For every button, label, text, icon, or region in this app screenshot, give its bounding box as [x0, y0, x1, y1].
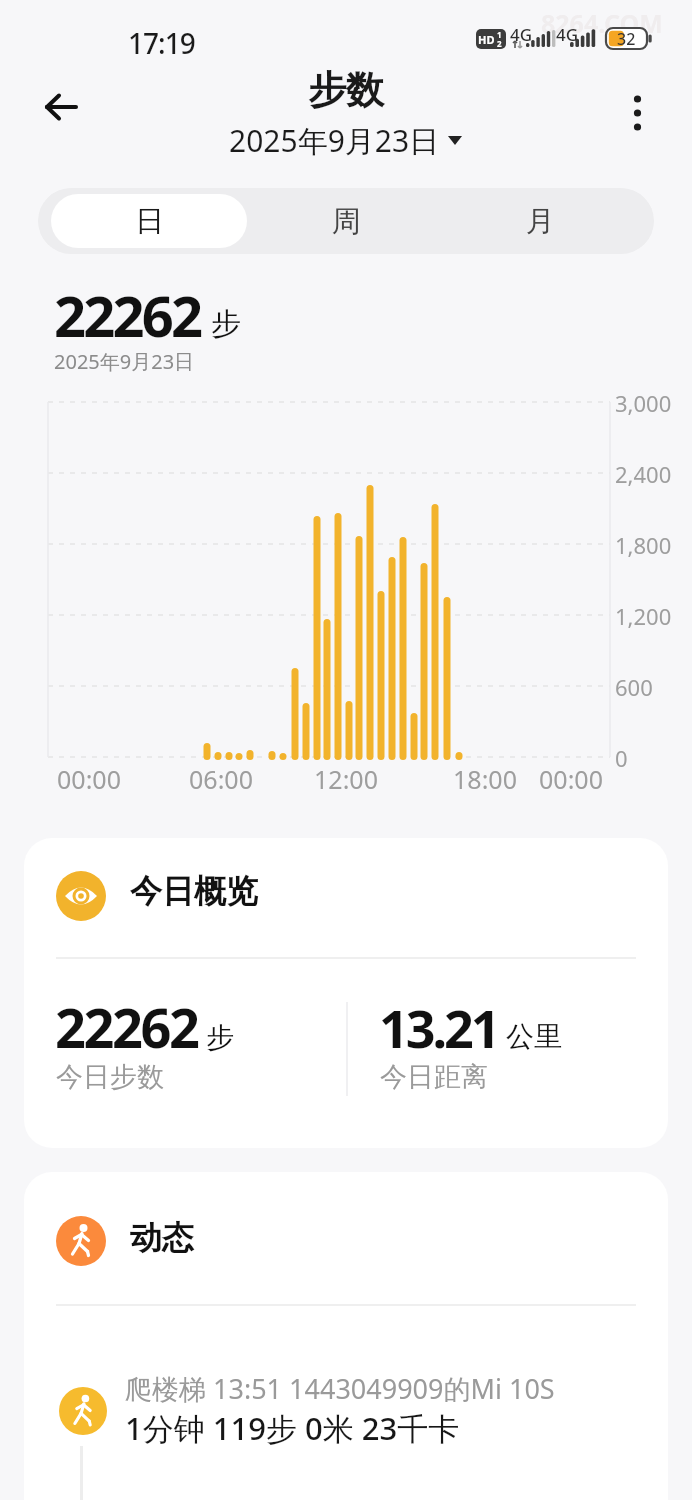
- staticText: 17:19: [128, 24, 195, 62]
- staticText: 今日步数: [56, 1060, 164, 1094]
- staticText: 3,000: [615, 388, 672, 418]
- button[interactable]: [36, 84, 88, 130]
- button[interactable]: [40, 1360, 692, 1470]
- staticText: 2,400: [615, 459, 672, 489]
- staticText: 2025年9月23日: [54, 348, 195, 375]
- staticText: 0: [615, 743, 628, 773]
- staticText: 1,800: [615, 530, 672, 560]
- staticText: 32: [617, 28, 636, 50]
- staticText: 4G: [556, 23, 579, 46]
- staticText: 月: [526, 203, 555, 240]
- staticText: 今日距离: [380, 1060, 488, 1094]
- button[interactable]: 月: [440, 188, 640, 254]
- staticText: 2025年9月23日: [229, 120, 440, 161]
- staticText: 1: [497, 29, 502, 40]
- staticText: 22262: [54, 277, 201, 353]
- staticText: 12:00: [314, 762, 378, 796]
- button[interactable]: [620, 88, 660, 136]
- staticText: 1分钟 119步 0米 23千卡: [125, 1407, 460, 1449]
- staticText: 00:00: [57, 762, 121, 796]
- staticText: 4G: [510, 23, 533, 46]
- button[interactable]: 日: [51, 194, 247, 248]
- staticText: 22262: [55, 990, 198, 1064]
- staticText: 步: [206, 1020, 234, 1055]
- staticText: HD: [478, 32, 495, 47]
- staticText: 步: [211, 305, 241, 343]
- staticText: 今日概览: [130, 871, 258, 911]
- staticText: 600: [615, 672, 653, 702]
- staticText: 13.21: [379, 992, 498, 1063]
- staticText: 爬楼梯 13:51 1443049909的Mi 10S: [125, 1370, 555, 1407]
- button[interactable]: 周: [243, 188, 449, 254]
- staticText: 8264.COM: [541, 6, 663, 40]
- staticText: 动态: [130, 1218, 194, 1258]
- staticText: 1,200: [615, 601, 672, 631]
- staticText: 00:00: [539, 762, 603, 796]
- staticText: 06:00: [189, 762, 253, 796]
- staticText: 18:00: [453, 762, 517, 796]
- staticText: 公里: [506, 1019, 562, 1054]
- button[interactable]: 2025年9月23日: [0, 120, 692, 161]
- staticText: 2: [497, 38, 502, 49]
- staticText: 周: [332, 203, 361, 240]
- staticText: 步数: [308, 66, 384, 114]
- staticText: 日: [135, 203, 164, 240]
